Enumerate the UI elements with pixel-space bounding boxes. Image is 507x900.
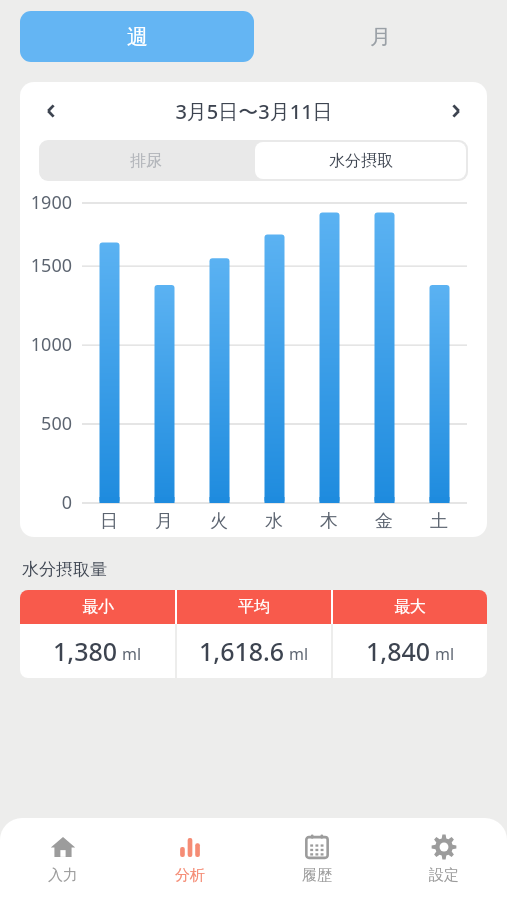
button[interactable]: 排尿: [39, 140, 253, 181]
button[interactable]: 入力: [0, 818, 126, 900]
button[interactable]: 最大: [333, 590, 487, 624]
button[interactable]: 分析: [126, 818, 253, 900]
staticText: 月: [370, 24, 391, 50]
button[interactable]: 週: [20, 11, 254, 62]
staticText: 最大: [394, 597, 426, 617]
staticText: 土: [430, 510, 448, 533]
staticText: 設定: [429, 866, 459, 885]
staticText: 1,380: [53, 634, 118, 668]
button[interactable]: 設定: [380, 818, 507, 900]
staticText: 1900: [30, 190, 72, 215]
staticText: 1,618.6: [199, 634, 285, 668]
staticText: 入力: [48, 866, 78, 885]
staticText: 1500: [30, 253, 72, 278]
button[interactable]: 水分摂取: [255, 142, 466, 179]
staticText: 金: [375, 510, 393, 533]
staticText: 履歴: [302, 866, 332, 885]
staticText: 0: [61, 490, 72, 515]
staticText: 火: [210, 510, 228, 533]
staticText: ml: [289, 643, 309, 665]
button[interactable]: Previous week: [20, 82, 82, 140]
staticText: 1,840: [366, 634, 431, 668]
staticText: 月: [155, 510, 173, 533]
staticText: ml: [122, 643, 142, 665]
staticText: 週: [127, 24, 148, 50]
staticText: 3月5日〜3月11日: [175, 98, 333, 125]
button[interactable]: 最小: [20, 590, 175, 624]
staticText: 最小: [82, 597, 114, 617]
staticText: 分析: [175, 866, 205, 885]
staticText: 木: [320, 510, 338, 533]
button[interactable]: Next week: [425, 82, 487, 140]
staticText: 1000: [30, 332, 72, 357]
staticText: 平均: [238, 597, 270, 617]
staticText: 水: [265, 510, 283, 533]
staticText: 500: [41, 411, 72, 436]
button[interactable]: 平均: [177, 590, 331, 624]
staticText: ml: [435, 643, 455, 665]
staticText: 日: [100, 510, 118, 533]
staticText: 水分摂取: [329, 151, 393, 171]
staticText: 水分摂取量: [22, 559, 107, 580]
button[interactable]: 履歴: [253, 818, 380, 900]
staticText: 排尿: [130, 151, 162, 171]
button[interactable]: 月: [254, 11, 507, 62]
